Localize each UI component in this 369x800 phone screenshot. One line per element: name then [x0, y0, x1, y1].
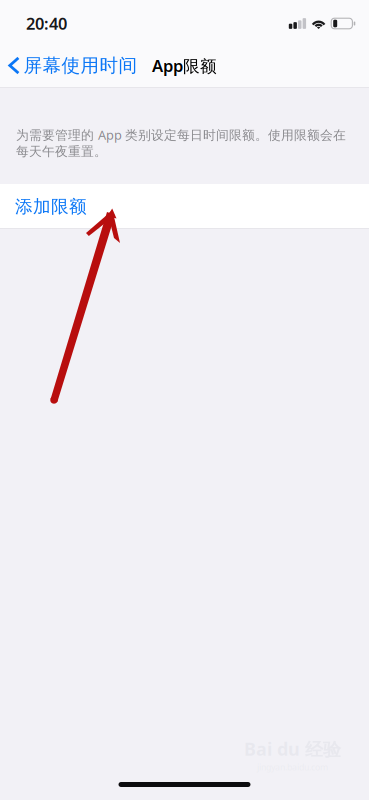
staticText: 屏幕使用时间: [23, 54, 137, 77]
button[interactable]: 添加限额: [0, 184, 369, 228]
button[interactable]: 屏幕使用时间: [0, 44, 145, 87]
staticText: 添加限额: [15, 196, 87, 218]
staticText: 20:40: [26, 12, 67, 35]
staticText: App限额: [152, 54, 217, 77]
staticText: 为需要管理的 App 类别设定每日时间限额。使用限额会在每天午夜重置。: [16, 126, 346, 160]
staticText: Bai du 经验: [244, 736, 341, 761]
